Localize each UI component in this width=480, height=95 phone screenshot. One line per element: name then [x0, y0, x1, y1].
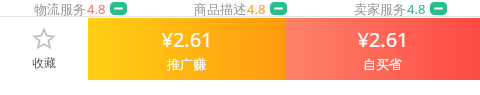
staticText: 卖家服务: [354, 1, 406, 17]
button[interactable]: ¥2.61: [88, 18, 285, 80]
other: Rating trend: [110, 2, 127, 15]
staticText: ¥2.61: [161, 26, 213, 53]
button[interactable]: 收藏: [0, 18, 88, 80]
staticText: ¥2.61: [357, 26, 409, 53]
staticText: 4.8: [247, 0, 266, 17]
staticText: 收藏: [32, 55, 56, 70]
staticText: 自买省: [363, 56, 402, 72]
button[interactable]: 商品描述: [160, 0, 320, 17]
button[interactable]: 物流服务: [0, 0, 160, 17]
other: Rating trend: [430, 2, 447, 15]
button[interactable]: ¥2.61: [285, 18, 480, 80]
staticText: 4.8: [407, 0, 426, 17]
button[interactable]: 卖家服务: [320, 0, 480, 17]
staticText: 商品描述: [194, 1, 246, 17]
staticText: 推广赚: [167, 56, 206, 72]
staticText: 4.8: [87, 0, 106, 17]
staticText: 物流服务: [34, 1, 86, 17]
other: Rating trend: [270, 2, 287, 15]
